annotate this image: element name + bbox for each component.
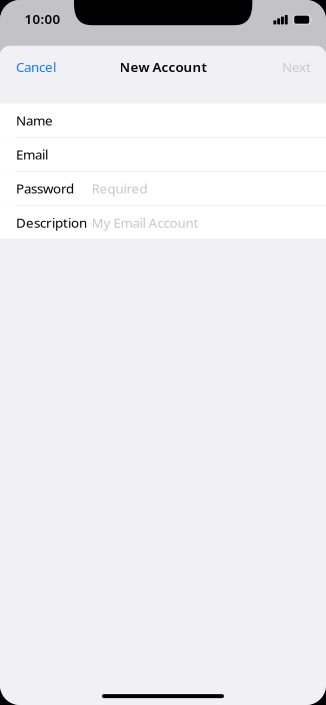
- staticText: 10:00: [24, 10, 60, 28]
- staticText: Email: [16, 145, 48, 163]
- staticText: Required: [91, 180, 147, 197]
- staticText: Cancel: [16, 58, 56, 76]
- staticText: Password: [16, 180, 74, 197]
- button[interactable]: Password: [0, 172, 326, 206]
- button[interactable]: Next: [272, 46, 326, 88]
- button[interactable]: Email: [0, 138, 326, 172]
- staticText: Description: [16, 214, 87, 231]
- staticText: My Email Account: [91, 214, 198, 231]
- staticText: Next: [282, 58, 311, 76]
- button[interactable]: Name: [0, 104, 326, 138]
- staticText: New Account: [119, 58, 206, 76]
- button[interactable]: Description: [0, 206, 326, 240]
- staticText: Name: [16, 111, 53, 129]
- button[interactable]: Cancel: [0, 46, 66, 88]
